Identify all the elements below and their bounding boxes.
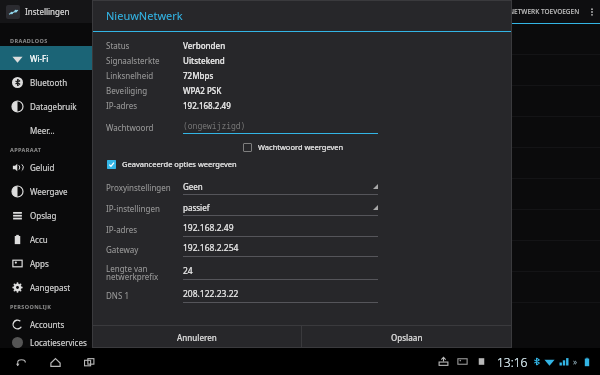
button[interactable]: Weergave: [0, 179, 92, 203]
button[interactable]: Aangepast: [0, 275, 92, 299]
button[interactable]: Accounts: [0, 312, 92, 336]
staticText: Accounts: [30, 319, 65, 330]
staticText: 72Mbps: [183, 70, 214, 81]
staticText: Status: [106, 40, 130, 51]
staticText: Opslag: [30, 210, 57, 221]
staticText: Beveiliging: [106, 85, 148, 96]
staticText: IP-instellingen: [106, 203, 160, 214]
staticText: Datagebruik: [30, 101, 77, 112]
staticText: »: [573, 356, 578, 367]
button[interactable]: [92, 241, 600, 272]
button[interactable]: [92, 55, 600, 86]
staticText: Accu: [30, 234, 48, 245]
button[interactable]: Home: [44, 351, 66, 373]
staticText: Meer...: [30, 125, 55, 136]
staticText: NETWERK TOEVOEGEN: [509, 7, 580, 16]
button[interactable]: IP-adres: [92, 219, 512, 239]
button[interactable]: Wachtwoord weergeven: [92, 142, 512, 152]
staticText: Opslaan: [391, 332, 423, 343]
staticText: Signaalsterkte: [106, 55, 160, 66]
staticText: APPARAAT: [10, 146, 42, 153]
staticText: WPA2 PSK: [183, 85, 222, 96]
staticText: Locatieservices: [30, 337, 87, 348]
button[interactable]: Opslaan: [302, 326, 512, 348]
staticText: Aangepast: [30, 282, 71, 293]
staticText: Apps: [30, 258, 49, 269]
staticText: 192.168.2.254: [183, 242, 239, 254]
staticText: 192.168.2.49: [183, 222, 234, 234]
button[interactable]: [92, 148, 600, 179]
staticText: Wi-Fi: [30, 53, 49, 64]
staticText: Uitstekend: [183, 55, 225, 66]
staticText: Wachtwoord: [106, 122, 154, 133]
button[interactable]: Opslag: [0, 203, 92, 227]
button[interactable]: [92, 210, 600, 241]
button[interactable]: [92, 117, 600, 148]
button[interactable]: Apps: [0, 251, 92, 275]
button[interactable]: Terug: [10, 351, 32, 373]
staticText: Lengte van netwerkprefix: [106, 263, 159, 282]
button[interactable]: [92, 86, 600, 117]
staticText: Wachtwoord weergeven: [258, 142, 344, 152]
staticText: DNS 1: [106, 290, 129, 301]
staticText: Geen: [183, 181, 203, 192]
staticText: IP-adres: [106, 100, 138, 111]
staticText: Annuleren: [177, 332, 217, 343]
staticText: NieuwNetwerk: [106, 8, 183, 23]
staticText: PERSOONLIJK: [10, 303, 52, 310]
staticText: Gateway: [106, 244, 139, 255]
button[interactable]: Meer...: [0, 118, 92, 142]
button[interactable]: Instellingen: [0, 0, 92, 23]
staticText: Proxyinstellingen: [106, 182, 171, 193]
button[interactable]: Meer opties: [584, 0, 600, 23]
button[interactable]: Gateway: [92, 239, 512, 259]
staticText: DRAADLOOS: [10, 37, 48, 44]
button[interactable]: (ongewijzigd): [183, 120, 378, 134]
button[interactable]: [92, 24, 600, 55]
staticText: Geavanceerde opties weergeven: [122, 159, 237, 169]
staticText: 208.122.23.22: [183, 288, 239, 300]
button[interactable]: DNS 1: [92, 285, 512, 305]
button[interactable]: Lengte van netwerkprefix: [92, 259, 512, 285]
staticText: Linksnelheid: [106, 70, 154, 81]
button[interactable]: Locatieservices: [0, 336, 92, 348]
button[interactable]: Annuleren: [92, 326, 301, 348]
button[interactable]: Geluid: [0, 155, 92, 179]
staticText: 24: [183, 265, 193, 277]
staticText: (ongewijzigd): [183, 120, 246, 131]
button[interactable]: Proxyinstellingen: [92, 177, 512, 198]
button[interactable]: Geavanceerde opties weergeven: [92, 159, 512, 169]
staticText: Verbonden: [183, 40, 226, 51]
button[interactable]: Bluetooth: [0, 70, 92, 94]
staticText: 13:16: [497, 354, 528, 370]
staticText: IP-adres: [106, 224, 138, 235]
button[interactable]: [92, 272, 600, 303]
button[interactable]: Datagebruik: [0, 94, 92, 118]
staticText: passief: [183, 202, 210, 213]
button[interactable]: IP-instellingen: [92, 198, 512, 219]
button[interactable]: NETWERK TOEVOEGEN: [505, 7, 584, 16]
button[interactable]: Recente apps: [78, 351, 100, 373]
button[interactable]: Accu: [0, 227, 92, 251]
button[interactable]: [92, 179, 600, 210]
staticText: 192.168.2.49: [183, 100, 231, 111]
button[interactable]: Wi-Fi: [0, 46, 92, 70]
staticText: Weergave: [30, 186, 68, 197]
staticText: Instellingen: [25, 6, 70, 17]
staticText: Geluid: [30, 162, 55, 173]
staticText: Bluetooth: [30, 77, 68, 88]
